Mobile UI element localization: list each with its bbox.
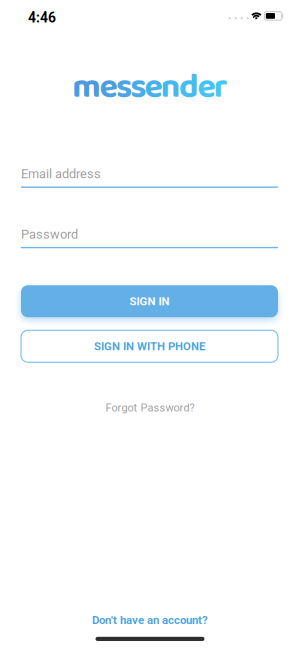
- staticText: m: [72, 60, 101, 114]
- staticText: n: [161, 60, 181, 114]
- button[interactable]: Don't have an account?: [92, 613, 208, 627]
- button[interactable]: SIGN IN WITH PHONE: [21, 330, 278, 362]
- staticText: Don't have an account?: [92, 613, 208, 627]
- staticText: 4:46: [28, 10, 56, 26]
- staticText: Password: [21, 227, 78, 242]
- staticText: d: [179, 60, 199, 114]
- staticText: s: [130, 60, 146, 114]
- button[interactable]: SIGN IN: [21, 285, 278, 317]
- staticText: e: [144, 60, 162, 114]
- staticText: SIGN IN WITH PHONE: [94, 340, 205, 353]
- button[interactable]: Forgot Password?: [105, 401, 194, 414]
- staticText: SIGN IN: [129, 295, 169, 308]
- staticText: Forgot Password?: [105, 401, 194, 414]
- staticText: Email address: [21, 166, 101, 181]
- staticText: s: [116, 60, 132, 114]
- staticText: e: [100, 60, 118, 114]
- staticText: e: [197, 60, 215, 114]
- staticText: r: [214, 60, 228, 114]
